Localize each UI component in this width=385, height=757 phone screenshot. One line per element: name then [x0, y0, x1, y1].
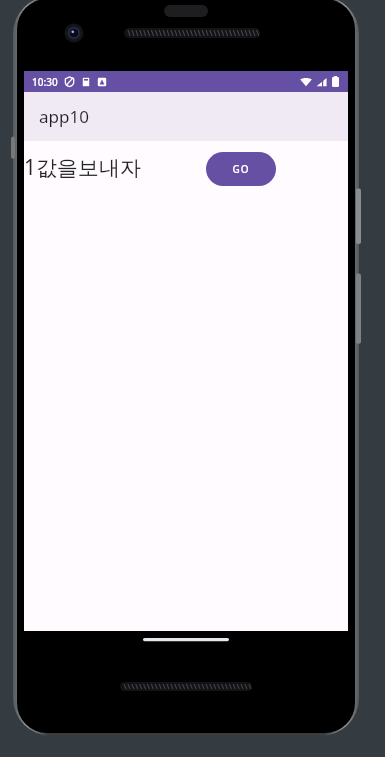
staticText: app10: [39, 105, 89, 128]
staticText: GO: [232, 162, 250, 176]
staticText: 1값을보내자: [24, 153, 142, 182]
button[interactable]: GO: [206, 152, 276, 186]
button[interactable]: 1값을보내자: [23, 153, 143, 182]
staticText: 10:30: [32, 75, 58, 89]
